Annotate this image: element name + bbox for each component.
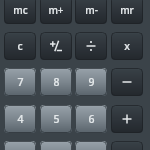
staticText: 9 <box>88 75 95 89</box>
button[interactable]: 7 <box>4 68 36 96</box>
staticText: 7 <box>17 75 24 89</box>
button[interactable]: 3 <box>75 141 107 150</box>
staticText: mr <box>120 3 134 17</box>
staticText: c <box>17 39 23 53</box>
button[interactable]: c <box>4 32 36 60</box>
button[interactable]: m- <box>75 0 107 24</box>
button[interactable]: 6 <box>75 105 107 133</box>
button[interactable]: Plus minus sign <box>40 32 72 60</box>
staticText: m- <box>85 3 98 17</box>
button[interactable]: 2 <box>40 141 72 150</box>
button[interactable]: Plus <box>111 105 143 133</box>
button[interactable]: Minus <box>111 68 143 96</box>
button[interactable]: mr <box>111 0 143 24</box>
button[interactable]: x <box>111 32 143 60</box>
staticText: x <box>124 39 130 53</box>
button[interactable]: 8 <box>40 68 72 96</box>
staticText: m+ <box>48 3 64 17</box>
button[interactable]: m+ <box>40 0 72 24</box>
button[interactable]: 5 <box>40 105 72 133</box>
staticText: 6 <box>88 112 95 126</box>
button[interactable]: 9 <box>75 68 107 96</box>
staticText: mc <box>13 3 28 17</box>
staticText: 4 <box>17 112 24 126</box>
button[interactable]: Equals <box>111 141 143 150</box>
button[interactable]: 4 <box>4 105 36 133</box>
staticText: 5 <box>53 112 60 126</box>
button[interactable]: mc <box>4 0 36 24</box>
button[interactable]: Divide <box>75 32 107 60</box>
button[interactable]: 1 <box>4 141 36 150</box>
staticText: 8 <box>53 75 60 89</box>
